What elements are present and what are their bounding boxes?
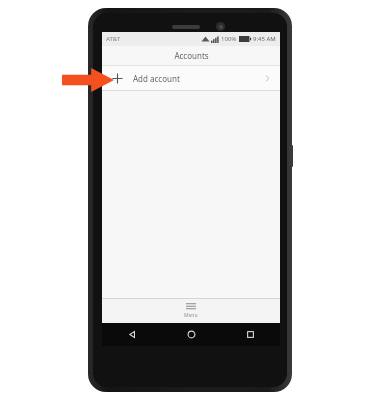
- staticText: Menu: [184, 312, 198, 319]
- staticText: AT&T: [106, 35, 120, 43]
- staticText: Accounts: [174, 50, 209, 61]
- button[interactable]: Add account: [102, 66, 280, 90]
- button[interactable]: Back: [102, 323, 162, 346]
- button[interactable]: Menu: [102, 299, 280, 323]
- button[interactable]: Recent apps: [221, 323, 280, 346]
- button[interactable]: Home: [162, 323, 221, 346]
- staticText: 100%: [221, 35, 237, 43]
- staticText: 9:45 AM: [253, 35, 276, 43]
- staticText: Add account: [133, 73, 180, 84]
